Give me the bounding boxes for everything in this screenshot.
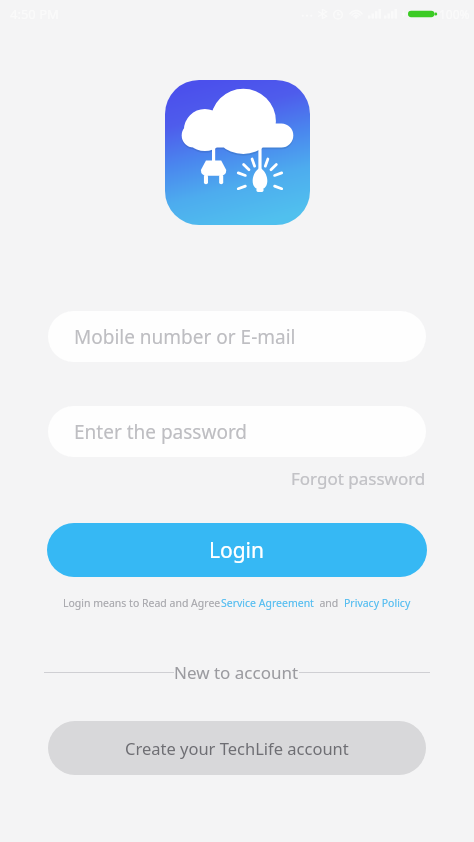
button[interactable]: Service Agreement (221, 596, 314, 610)
staticText: Privacy Policy (344, 596, 411, 610)
staticText: Service Agreement (221, 596, 314, 610)
staticText: Enter the password (74, 419, 248, 445)
staticText: Mobile number or E-mail (74, 324, 296, 350)
button[interactable]: Login (47, 523, 427, 577)
staticText: Forgot password (291, 467, 426, 490)
staticText: Login means to Read and Agree (63, 596, 221, 610)
button[interactable]: Create your TechLife account (48, 721, 426, 775)
staticText: Login (209, 536, 265, 565)
staticText: Create your TechLife account (125, 737, 349, 759)
button[interactable]: Enter the password (48, 406, 426, 457)
button[interactable]: Privacy Policy (344, 596, 411, 610)
staticText: and (314, 596, 344, 610)
button[interactable]: Mobile number or E-mail (48, 311, 426, 362)
button[interactable]: Forgot password (289, 465, 428, 492)
staticText: New to account (174, 661, 299, 684)
